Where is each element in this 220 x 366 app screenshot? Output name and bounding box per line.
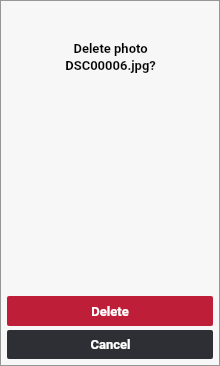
staticText: Delete — [91, 304, 129, 319]
staticText: Cancel — [90, 337, 131, 352]
button[interactable]: Cancel — [7, 330, 213, 359]
button[interactable]: Delete — [7, 296, 213, 326]
staticText: Delete photo DSC00006.jpg? — [14, 41, 207, 74]
